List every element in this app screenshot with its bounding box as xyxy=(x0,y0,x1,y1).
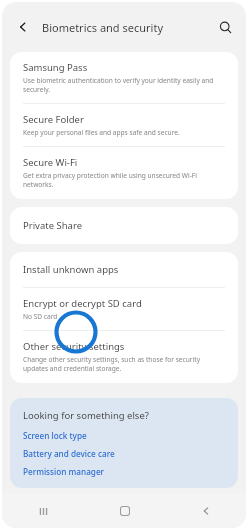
staticText: Screen lock type xyxy=(23,430,87,441)
staticText: Permission manager xyxy=(23,466,105,477)
button[interactable]: Samsung Pass xyxy=(10,52,238,103)
button[interactable]: Encrypt or decrypt SD card xyxy=(10,288,238,330)
staticText: Secure Wi-Fi xyxy=(23,156,78,169)
button[interactable]: Other security settings xyxy=(10,331,238,383)
button[interactable]: Permission manager xyxy=(23,466,105,477)
staticText: Samsung Pass xyxy=(23,61,88,74)
button[interactable]: Install unknown apps xyxy=(10,252,238,287)
staticText: Secure Folder xyxy=(23,113,84,126)
staticText: Battery and device care xyxy=(23,448,115,459)
staticText: Biometrics and security xyxy=(42,20,163,35)
staticText: Use biometric authentication to verify y… xyxy=(23,76,225,94)
button[interactable]: Back xyxy=(12,16,34,38)
staticText: Install unknown apps xyxy=(23,263,119,276)
staticText: Get extra privacy protection while using… xyxy=(23,171,225,189)
staticText: Private Share xyxy=(23,219,83,232)
staticText: Encrypt or decrypt SD card xyxy=(23,297,142,310)
staticText: Keep your personal files and apps safe a… xyxy=(23,128,180,137)
button[interactable]: Search xyxy=(214,16,236,38)
button[interactable]: Screen lock type xyxy=(23,430,87,441)
staticText: Other security settings xyxy=(23,340,125,353)
button[interactable]: Home xyxy=(84,494,165,528)
button[interactable]: Private Share xyxy=(10,207,238,244)
staticText: No SD card xyxy=(23,312,58,321)
staticText: Change other security settings, such as … xyxy=(23,355,225,373)
button[interactable]: Secure Wi-Fi xyxy=(10,147,238,199)
button[interactable]: Recent apps xyxy=(2,494,84,528)
staticText: Looking for something else? xyxy=(23,409,149,422)
button[interactable]: Secure Folder xyxy=(10,104,238,146)
button[interactable]: Back xyxy=(165,494,246,528)
button[interactable]: Battery and device care xyxy=(23,448,115,459)
